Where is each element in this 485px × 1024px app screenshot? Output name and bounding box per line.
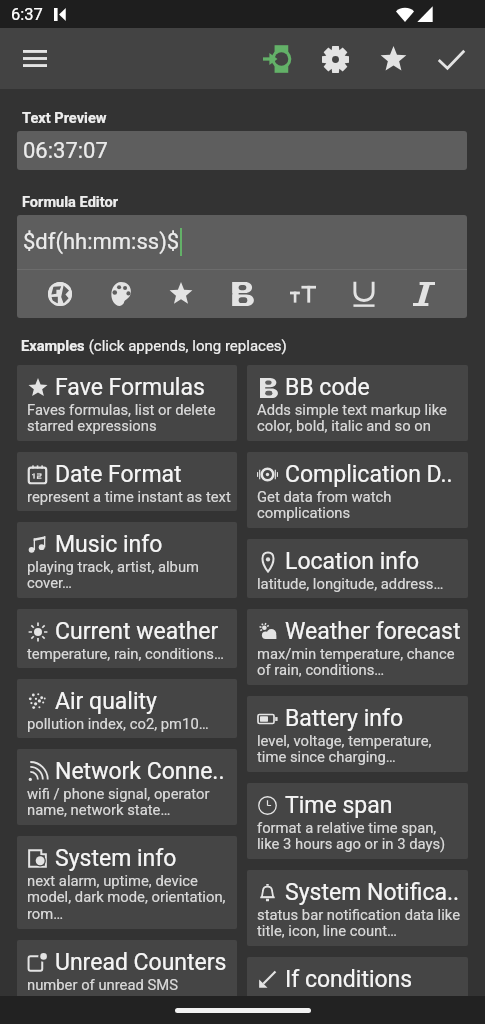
staticText: latitude, longitude, address… (257, 575, 444, 592)
staticText: status bar notification data like title,… (257, 906, 462, 940)
button[interactable]: Date Format (17, 452, 237, 511)
staticText: level, voltage, temperature, time since … (257, 732, 462, 766)
button[interactable]: Complication D.. (247, 452, 468, 528)
staticText: max/min temperature, chance of rain, con… (257, 645, 462, 679)
staticText: Battery info (285, 705, 404, 732)
button[interactable]: Favourite formula (159, 272, 203, 316)
button[interactable]: Air quality (17, 679, 237, 738)
staticText: playing track, artist, album cover… (27, 558, 231, 592)
staticText: next alarm, uptime, device model, dark m… (27, 872, 231, 923)
button[interactable]: System info (17, 836, 237, 929)
staticText: represent a time instant as text (27, 488, 231, 505)
staticText: format a relative time span, like 3 hour… (257, 819, 462, 853)
staticText: Music info (55, 531, 163, 558)
button[interactable]: Insert world emoji (38, 272, 82, 316)
button[interactable]: BB code (247, 365, 468, 441)
button[interactable]: Text size (281, 272, 325, 316)
staticText: Examples (21, 337, 85, 354)
button[interactable]: Settings (306, 32, 364, 86)
button[interactable]: Current weather (17, 609, 237, 668)
button[interactable]: Unread Counters (17, 940, 237, 999)
button[interactable]: Time span (247, 783, 468, 859)
staticText: wifi / phone signal, operator name, netw… (27, 785, 231, 819)
staticText: Formula Editor (22, 193, 119, 210)
button[interactable]: Italic (402, 272, 446, 316)
button[interactable]: Insert colour (99, 272, 143, 316)
button[interactable]: Music info (17, 522, 237, 598)
button[interactable]: System Notifica.. (247, 870, 468, 946)
staticText: Text Preview (22, 109, 107, 126)
staticText: number of unread SMS (27, 976, 179, 993)
button[interactable]: Fave Formulas (17, 365, 237, 441)
staticText: System info (55, 845, 177, 872)
staticText: Location info (285, 548, 420, 575)
staticText: Fave Formulas (55, 374, 205, 401)
button[interactable]: If conditions (247, 957, 468, 999)
button[interactable]: Bold (220, 272, 264, 316)
button[interactable]: Battery info (247, 696, 468, 772)
button[interactable]: Network Conne.. (17, 749, 237, 825)
staticText: Unread Counters (55, 949, 227, 976)
button[interactable]: Add to favourites (364, 32, 422, 86)
staticText: 06:37:07 (23, 138, 108, 164)
button[interactable]: Send to watch (248, 32, 306, 86)
staticText: Adds simple text markup like color, bold… (257, 401, 462, 435)
staticText: Date Format (55, 461, 182, 488)
staticText: $df(hh:mm:ss)$ (23, 229, 180, 255)
staticText: Network Conne.. (55, 758, 225, 785)
button[interactable]: Location info (247, 539, 468, 598)
staticText: Current weather (55, 618, 219, 645)
staticText: If conditions (285, 966, 413, 993)
staticText: 6:37 (11, 5, 43, 24)
staticText: Time span (285, 792, 393, 819)
staticText: temperature, rain, conditions… (27, 645, 224, 662)
button[interactable]: Open navigation menu (11, 35, 58, 82)
staticText: BB code (285, 374, 370, 401)
staticText: Faves formulas, list or delete starred e… (27, 401, 231, 435)
staticText: pollution index, co2, pm10… (27, 715, 209, 732)
staticText: Get data from watch complications (257, 488, 462, 522)
staticText: Complication D.. (285, 461, 453, 488)
button[interactable]: Weather forecast (247, 609, 468, 685)
staticText: (click appends, long replaces) (85, 337, 287, 355)
button[interactable]: Underline (342, 272, 386, 316)
button[interactable]: Save (422, 32, 480, 86)
staticText: System Notifica.. (285, 879, 460, 906)
staticText: Air quality (55, 688, 157, 715)
staticText: Weather forecast (285, 618, 461, 645)
